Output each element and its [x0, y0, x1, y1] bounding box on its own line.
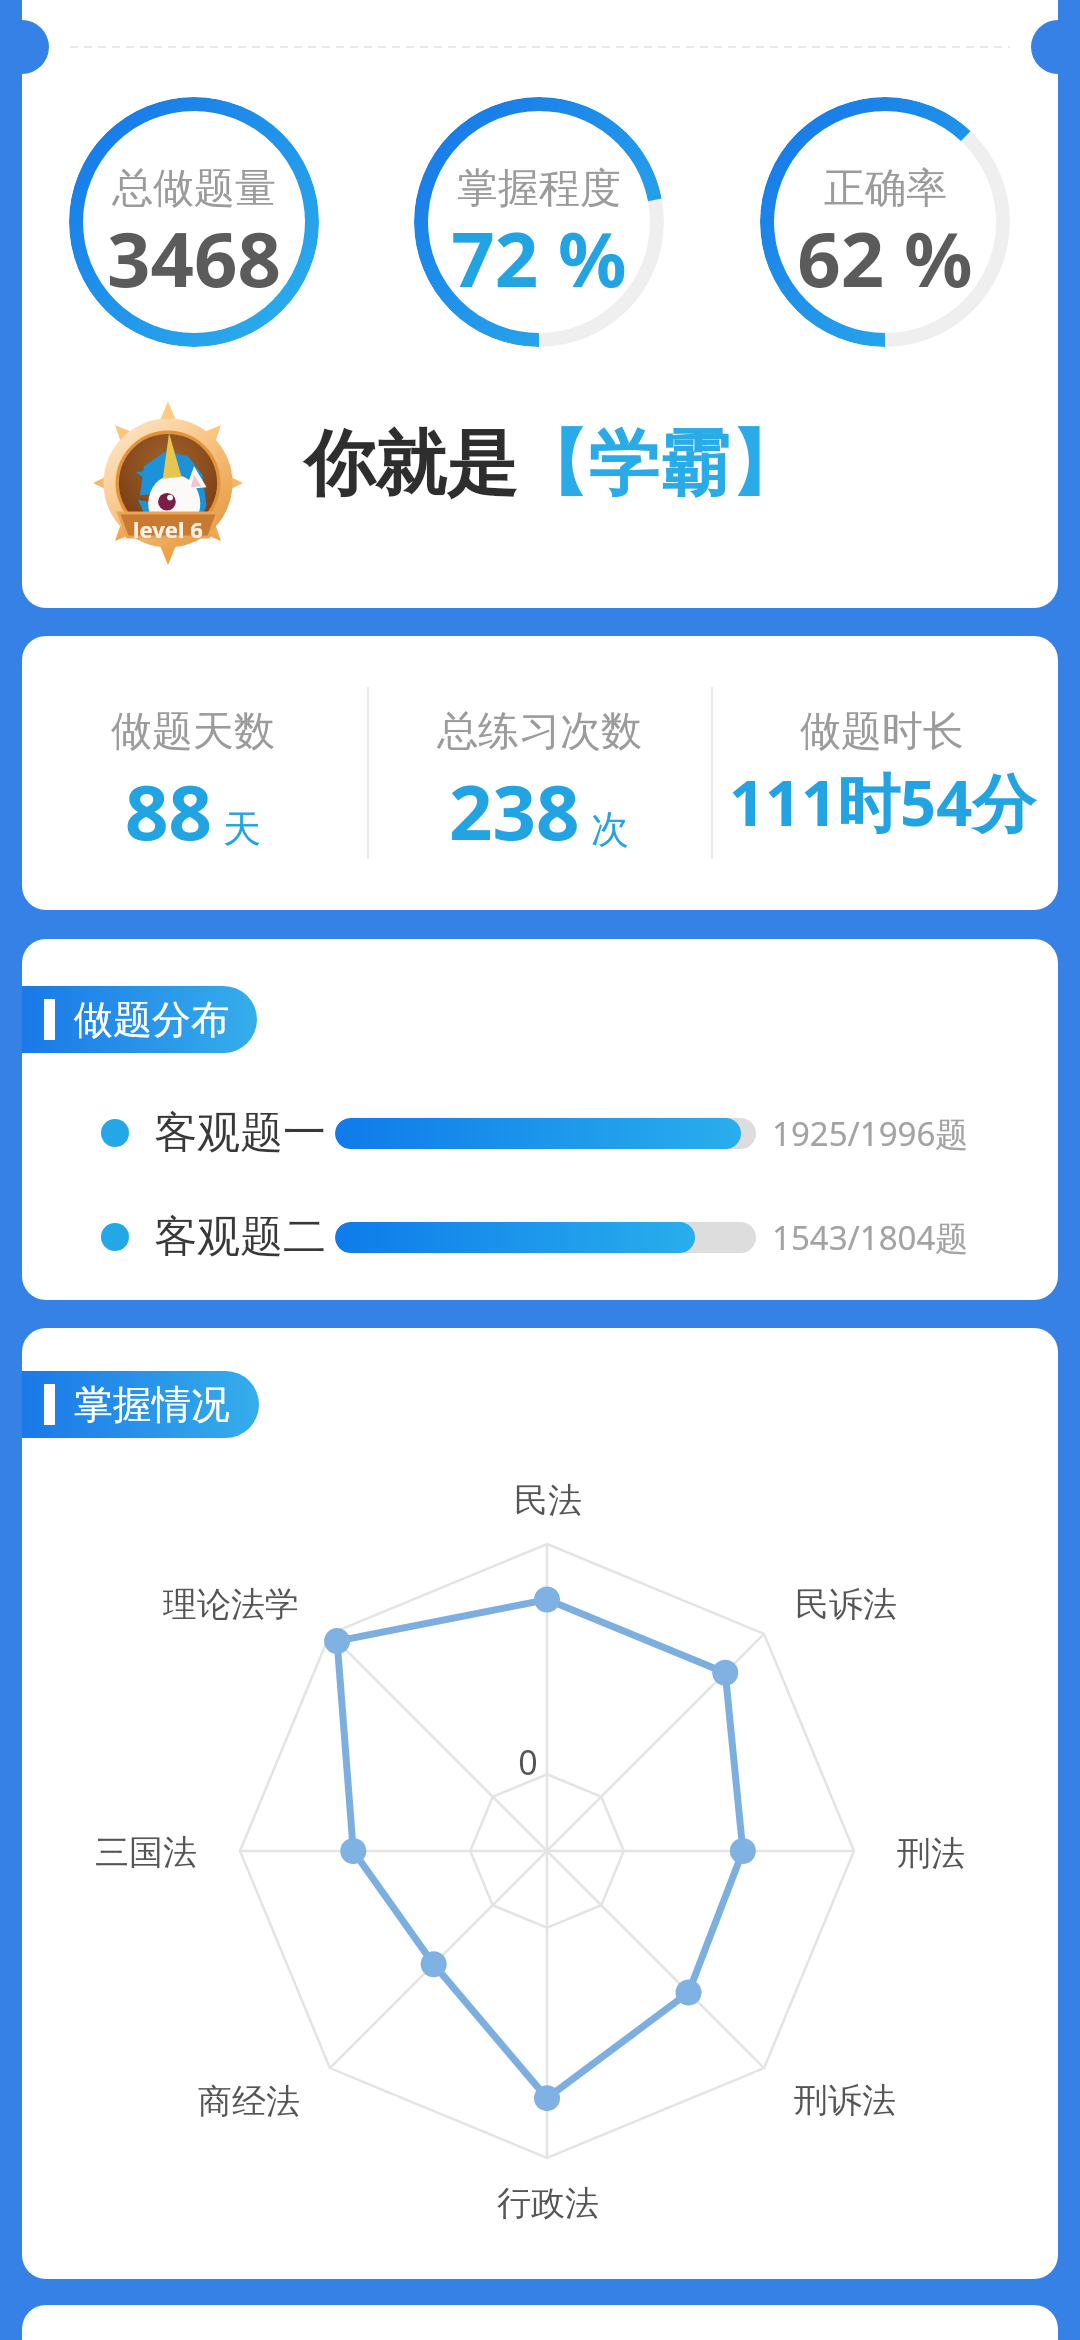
staticText: 0	[518, 1739, 538, 1785]
staticText: 【学霸】	[517, 420, 801, 509]
staticText: 做题时长	[800, 706, 964, 758]
staticText: 掌握程度	[457, 163, 621, 215]
staticText: 1925/1996题	[772, 1111, 969, 1156]
staticText: 做题分布	[74, 995, 230, 1044]
button[interactable]: 总做题量	[69, 97, 319, 347]
staticText: 总做题量	[112, 163, 276, 215]
staticText: level 6	[133, 514, 203, 544]
button[interactable]: 掌握程度	[414, 97, 664, 347]
staticText: 客观题二	[154, 1210, 326, 1264]
staticText: 行政法	[497, 2182, 599, 2225]
staticText: 做题天数	[111, 706, 275, 758]
button[interactable]: 掌握情况	[22, 1371, 259, 1438]
staticText: 你就是	[304, 420, 517, 509]
staticText: 民诉法	[795, 1583, 897, 1626]
button[interactable]: 正确率	[760, 97, 1010, 347]
staticText: 理论法学	[163, 1583, 299, 1626]
staticText: 掌握情况	[74, 1380, 230, 1429]
staticText: 三国法	[95, 1831, 197, 1874]
staticText: 62 %	[797, 206, 973, 310]
staticText: 客观题一	[154, 1106, 326, 1160]
button[interactable]: 客观题二	[22, 1207, 1058, 1267]
staticText: 3468	[107, 206, 281, 310]
staticText: 111时54分	[729, 759, 1036, 845]
staticText: 1543/1804题	[772, 1215, 969, 1260]
button[interactable]: 总练习次数	[349, 636, 729, 910]
staticText: 正确率	[824, 163, 947, 215]
staticText: 次	[591, 805, 629, 853]
staticText: 刑诉法	[794, 2079, 896, 2122]
button[interactable]: 客观题一	[22, 1103, 1058, 1163]
staticText: 总练习次数	[437, 706, 642, 758]
staticText: 民法	[514, 1479, 582, 1522]
button[interactable]: 做题天数	[22, 636, 383, 910]
staticText: 238	[449, 759, 580, 863]
button[interactable]: 做题时长	[692, 636, 1058, 910]
staticText: 天	[223, 805, 261, 853]
staticText: 88	[125, 759, 212, 863]
staticText: 刑法	[897, 1832, 965, 1875]
button[interactable]: 做题分布	[22, 986, 257, 1053]
staticText: 商经法	[198, 2080, 300, 2123]
other: 等级 6 徽章	[93, 401, 243, 565]
staticText: 72 %	[451, 206, 627, 310]
